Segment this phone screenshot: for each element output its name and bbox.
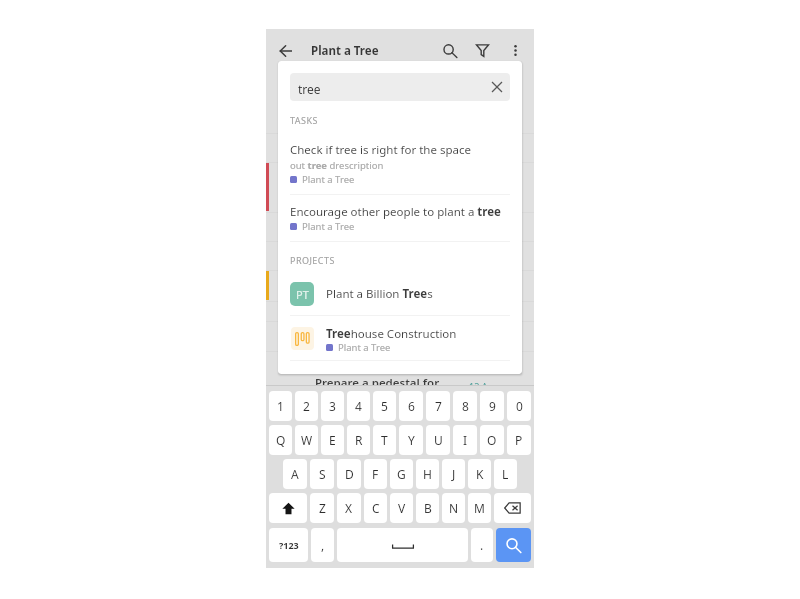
staticText: B xyxy=(424,500,432,516)
button[interactable]: Back xyxy=(273,38,298,63)
button[interactable]: Z xyxy=(310,493,334,523)
button[interactable]: 6 xyxy=(399,391,423,421)
button[interactable]: , xyxy=(311,528,334,562)
button[interactable]: O xyxy=(480,425,504,455)
staticText: J xyxy=(452,466,456,482)
button[interactable]: V xyxy=(390,493,413,523)
button[interactable]: 4 xyxy=(347,391,370,421)
button[interactable]: Search xyxy=(496,528,531,562)
staticText: ?123 xyxy=(279,539,299,551)
staticText: L xyxy=(502,466,509,482)
button[interactable]: F xyxy=(364,459,387,489)
button[interactable]: J xyxy=(442,459,465,489)
staticText: N xyxy=(449,500,459,516)
button[interactable]: X xyxy=(337,493,361,523)
button[interactable]: Y xyxy=(399,425,423,455)
staticText: C xyxy=(372,500,380,516)
staticText: 12 Aug xyxy=(469,380,499,392)
staticText: H xyxy=(423,466,432,482)
button[interactable]: T xyxy=(373,425,396,455)
staticText: 3 xyxy=(329,398,336,414)
button[interactable]: 1 xyxy=(269,391,292,421)
button[interactable]: I xyxy=(453,425,477,455)
button[interactable]: R xyxy=(347,425,370,455)
button[interactable]: tree xyxy=(290,73,510,101)
staticText: . xyxy=(480,537,484,553)
staticText: PT xyxy=(296,287,309,302)
button[interactable]: Shift xyxy=(269,493,307,523)
button[interactable]: More options xyxy=(502,37,529,64)
button[interactable]: B xyxy=(416,493,439,523)
staticText: P xyxy=(515,432,523,448)
button[interactable]: Space xyxy=(337,528,468,562)
button[interactable]: 8 xyxy=(453,391,477,421)
button[interactable]: 0 xyxy=(507,391,531,421)
button[interactable]: K xyxy=(468,459,491,489)
button[interactable]: S xyxy=(310,459,334,489)
staticText: V xyxy=(398,500,406,516)
staticText: U xyxy=(434,432,443,448)
button[interactable]: A xyxy=(283,459,307,489)
staticText: 6 xyxy=(408,398,415,414)
button[interactable]: 5 xyxy=(373,391,396,421)
staticText: K xyxy=(476,466,484,482)
staticText: 2 xyxy=(303,398,310,414)
button[interactable]: 3 xyxy=(321,391,344,421)
button[interactable]: P xyxy=(507,425,531,455)
button[interactable]: Treehouse Construction xyxy=(278,318,522,360)
button[interactable]: 2 xyxy=(295,391,318,421)
staticText: Plant a Tree xyxy=(302,220,355,233)
button[interactable]: D xyxy=(337,459,361,489)
button[interactable]: Backspace xyxy=(494,493,531,523)
button[interactable]: M xyxy=(468,493,491,523)
button[interactable]: 7 xyxy=(426,391,450,421)
button[interactable]: Encourage other people to plant a tree xyxy=(278,198,522,241)
button[interactable]: U xyxy=(426,425,450,455)
staticText: S xyxy=(319,466,326,482)
staticText: Plant a Billion Trees xyxy=(326,286,433,302)
staticText: M xyxy=(474,500,485,516)
staticText: tree xyxy=(298,81,321,97)
staticText: Plant a Tree xyxy=(338,341,391,354)
staticText: Prepare a pedestal for xyxy=(315,375,440,391)
button[interactable]: Clear search xyxy=(484,74,510,100)
staticText: 5 xyxy=(381,398,388,414)
staticText: A xyxy=(291,466,299,482)
staticText: TASKS xyxy=(290,114,318,126)
staticText: Plant a Tree xyxy=(311,43,379,59)
staticText: Treehouse Construction xyxy=(326,326,457,342)
button[interactable]: Filter xyxy=(469,37,496,64)
staticText: Z xyxy=(319,500,326,516)
button[interactable]: ?123 xyxy=(269,528,308,562)
staticText: E xyxy=(329,432,336,448)
staticText: R xyxy=(355,432,363,448)
button[interactable]: L xyxy=(494,459,517,489)
staticText: Q xyxy=(276,432,286,448)
staticText: Check if tree is right for the space xyxy=(290,142,471,158)
staticText: Y xyxy=(408,432,415,448)
staticText: T xyxy=(381,432,388,448)
button[interactable]: N xyxy=(442,493,465,523)
staticText: Plant a Tree xyxy=(302,173,355,186)
staticText: PROJECTS xyxy=(290,254,335,266)
button[interactable]: Q xyxy=(269,425,292,455)
staticText: W xyxy=(301,432,313,448)
staticText: 9 xyxy=(489,398,496,414)
button[interactable]: W xyxy=(295,425,318,455)
button[interactable]: C xyxy=(364,493,387,523)
staticText: 7 xyxy=(435,398,442,414)
button[interactable]: Check if tree is right for the space xyxy=(278,135,522,193)
staticText: , xyxy=(321,537,325,553)
staticText: out tree drescription xyxy=(290,159,384,172)
button[interactable]: G xyxy=(390,459,413,489)
button[interactable]: 9 xyxy=(480,391,504,421)
button[interactable]: H xyxy=(416,459,439,489)
button[interactable]: PT xyxy=(278,272,522,315)
button[interactable]: E xyxy=(321,425,344,455)
staticText: 0 xyxy=(516,398,523,414)
staticText: Encourage other people to plant a tree xyxy=(290,204,501,220)
staticText: O xyxy=(487,432,497,448)
staticText: X xyxy=(345,500,353,516)
button[interactable]: . xyxy=(471,528,493,562)
button[interactable]: Search xyxy=(436,37,463,64)
